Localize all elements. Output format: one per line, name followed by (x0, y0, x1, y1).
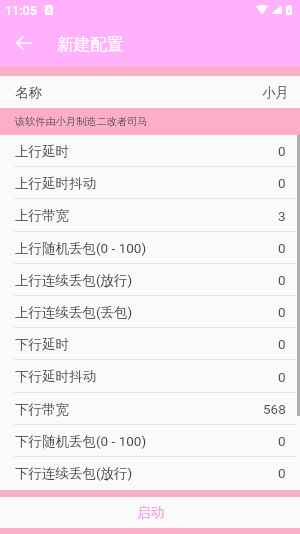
staticText: 下行连续丢包(放行) (15, 465, 133, 482)
staticText: 该软件由小月制造二改者司马 (15, 115, 148, 128)
staticText: 0 (278, 272, 286, 288)
staticText: 上行连续丢包(放行) (15, 272, 133, 289)
staticText: 0 (278, 369, 286, 385)
button[interactable]: 下行随机丢包(0 - 100) (0, 425, 300, 457)
button[interactable]: 上行延时 (0, 135, 300, 167)
button[interactable]: 启动 (0, 497, 300, 528)
button[interactable]: 下行连续丢包(放行) (0, 457, 300, 489)
staticText: 0 (278, 143, 286, 159)
staticText: 0 (278, 304, 286, 320)
button[interactable]: 上行连续丢包(丢包) (0, 296, 300, 328)
button[interactable]: 上行延时抖动 (0, 167, 300, 199)
staticText: 0 (278, 433, 286, 449)
staticText: 0 (278, 240, 286, 256)
staticText: 3 (278, 208, 286, 224)
staticText: 上行延时抖动 (15, 175, 96, 192)
staticText: 0 (278, 336, 286, 352)
button[interactable]: 上行连续丢包(放行) (0, 264, 300, 296)
button[interactable]: 下行延时抖动 (0, 360, 300, 393)
staticText: 下行带宽 (15, 401, 69, 418)
staticText: 下行随机丢包(0 - 100) (15, 433, 147, 450)
button[interactable]: 下行延时 (0, 328, 300, 360)
staticText: 启动 (137, 504, 164, 521)
staticText: 11:05 (5, 3, 37, 18)
staticText: 0 (278, 175, 286, 191)
button[interactable]: 上行随机丢包(0 - 100) (0, 232, 300, 264)
staticText: 上行连续丢包(丢包) (15, 304, 133, 321)
staticText: 0 (278, 465, 286, 481)
staticText: 上行延时 (15, 143, 69, 160)
button[interactable]: 下行带宽 (0, 393, 300, 425)
staticText: 上行随机丢包(0 - 100) (15, 240, 147, 257)
staticText: 下行延时 (15, 336, 69, 353)
button[interactable]: 名称 (0, 76, 300, 108)
staticText: 上行带宽 (15, 207, 69, 224)
staticText: 568 (263, 401, 286, 417)
staticText: 小月 (262, 84, 289, 101)
staticText: 名称 (15, 84, 42, 101)
button[interactable]: Back (9, 28, 39, 58)
button[interactable]: 上行带宽 (0, 199, 300, 232)
staticText: 下行延时抖动 (15, 368, 96, 385)
staticText: 新建配置 (57, 34, 124, 55)
